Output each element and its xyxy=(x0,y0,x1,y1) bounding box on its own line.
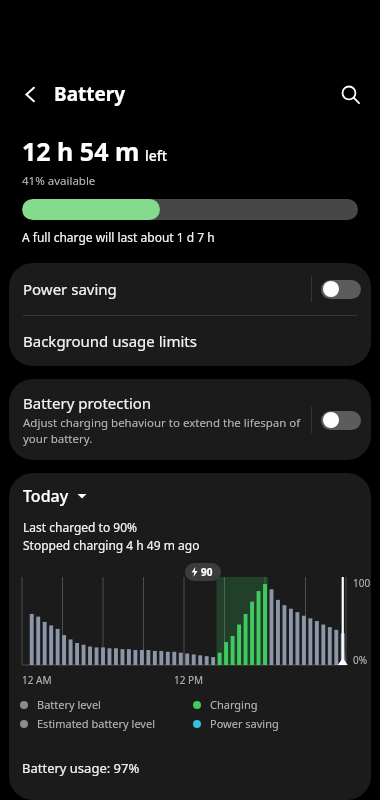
staticText: Adjust charging behaviour to extend the … xyxy=(23,415,305,446)
staticText: 41% available xyxy=(22,173,96,189)
staticText: 12 PM xyxy=(174,673,204,687)
staticText: Background usage limits xyxy=(23,331,197,351)
staticText: Battery level xyxy=(37,697,101,712)
staticText: 12 AM xyxy=(22,673,52,687)
button[interactable]: Battery protection xyxy=(9,393,371,446)
staticText: Battery usage: 97% xyxy=(22,759,140,777)
staticText: Battery protection xyxy=(23,393,152,413)
button[interactable]: Search xyxy=(332,76,368,112)
staticText: 90 xyxy=(201,565,213,579)
staticText: 12 h 54 m xyxy=(22,134,140,168)
staticText: Estimated battery level xyxy=(37,716,155,731)
button[interactable]: Today xyxy=(23,485,87,507)
staticText: left xyxy=(145,146,168,165)
button[interactable]: Battery protection toggle xyxy=(321,409,361,431)
button[interactable]: Back xyxy=(12,76,48,112)
staticText: Battery xyxy=(54,81,126,107)
staticText: Stopped charging 4 h 49 m ago xyxy=(23,537,200,553)
staticText: 0% xyxy=(353,653,368,667)
staticText: Charging xyxy=(210,697,258,712)
staticText: Today xyxy=(23,485,69,507)
button[interactable]: Background usage limits xyxy=(9,316,371,366)
staticText: Power saving xyxy=(210,716,279,731)
staticText: Last charged to 90% xyxy=(23,519,138,535)
staticText: A full charge will last about 1 d 7 h xyxy=(22,229,215,245)
staticText: 100 xyxy=(353,576,371,590)
button[interactable]: Power saving toggle xyxy=(321,278,361,300)
staticText: Power saving xyxy=(23,279,311,299)
button[interactable]: Power saving xyxy=(9,263,371,315)
